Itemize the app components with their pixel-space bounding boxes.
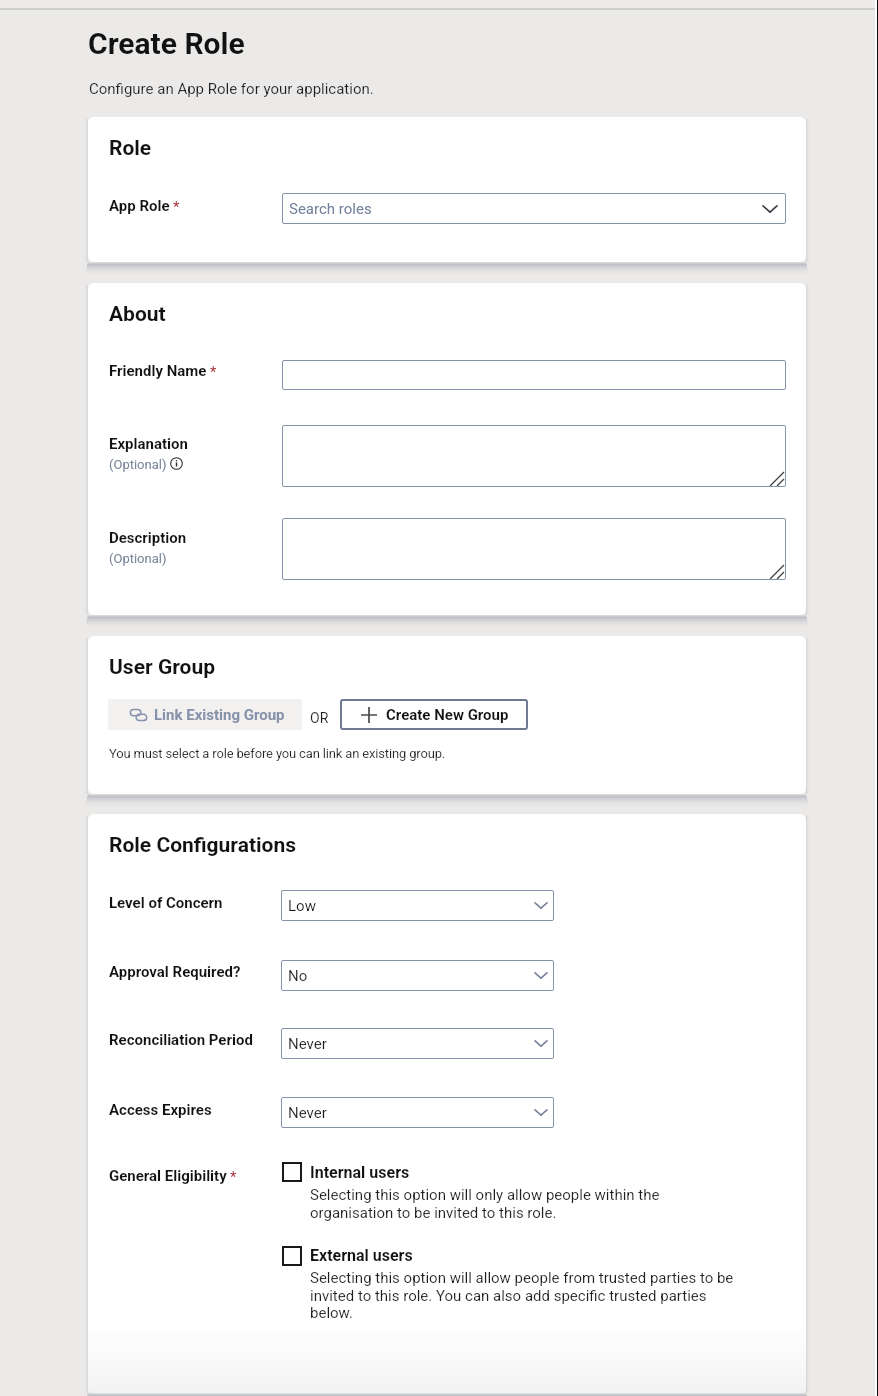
- button[interactable]: Create New Group: [340, 699, 528, 730]
- button[interactable]: No: [281, 960, 554, 991]
- button[interactable]: Low: [281, 890, 554, 921]
- staticText: *: [210, 363, 217, 381]
- staticText: Access Expires: [109, 1101, 212, 1119]
- staticText: *: [173, 198, 180, 216]
- staticText: App Role: [109, 197, 170, 215]
- button[interactable]: Link Existing Group: [108, 699, 302, 730]
- staticText: Selecting this option will allow people …: [310, 1269, 734, 1321]
- button[interactable]: Never: [281, 1028, 554, 1059]
- staticText: Link Existing Group: [154, 706, 285, 724]
- staticText: About: [109, 302, 166, 327]
- staticText: Create Role: [88, 26, 245, 61]
- staticText: Role: [109, 136, 152, 161]
- button[interactable]: Explanation: [282, 425, 786, 487]
- staticText: Low: [288, 897, 316, 915]
- staticText: Search roles: [289, 200, 372, 218]
- staticText: Explanation: [109, 435, 188, 453]
- staticText: Configure an App Role for your applicati…: [89, 80, 374, 98]
- staticText: User Group: [109, 655, 215, 680]
- button[interactable]: Search roles: [282, 193, 786, 224]
- button[interactable]: External users: [282, 1246, 302, 1266]
- staticText: Approval Required?: [109, 963, 241, 981]
- staticText: No: [288, 967, 308, 985]
- staticText: Selecting this option will only allow pe…: [310, 1186, 660, 1221]
- staticText: *: [230, 1168, 237, 1186]
- staticText: You must select a role before you can li…: [109, 746, 446, 761]
- staticText: External users: [310, 1246, 413, 1265]
- staticText: Description: [109, 529, 187, 547]
- staticText: Reconciliation Period: [109, 1031, 253, 1049]
- staticText: General Eligibility: [109, 1167, 227, 1185]
- staticText: (Optional): [109, 551, 167, 566]
- staticText: Create New Group: [386, 706, 509, 724]
- staticText: Internal users: [310, 1163, 410, 1182]
- button[interactable]: Internal users: [282, 1162, 302, 1182]
- staticText: Never: [288, 1035, 327, 1053]
- button[interactable]: Description: [282, 518, 786, 580]
- staticText: Level of Concern: [109, 894, 223, 912]
- staticText: Never: [288, 1104, 327, 1122]
- staticText: Role Configurations: [109, 833, 297, 858]
- staticText: OR: [310, 710, 329, 726]
- button[interactable]: Never: [281, 1097, 554, 1128]
- staticText: Friendly Name: [109, 362, 207, 380]
- staticText: (Optional): [109, 457, 167, 472]
- button[interactable]: Friendly Name: [282, 360, 786, 390]
